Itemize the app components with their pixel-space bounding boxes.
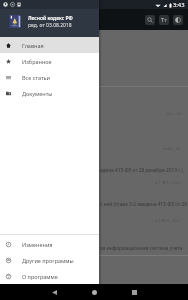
staticText: 3:43 <box>173 1 185 9</box>
button[interactable]: Home <box>86 284 102 300</box>
button[interactable]: Все статьи <box>0 69 99 85</box>
button[interactable]: Contrast <box>171 13 185 27</box>
button[interactable]: Text size <box>157 13 171 27</box>
staticText: ч.1 М.1 - 10.3 <box>155 180 181 185</box>
button[interactable]: Back <box>46 284 62 300</box>
button[interactable]: Избранное <box>0 53 99 69</box>
staticText: Изменения <box>22 241 53 248</box>
button[interactable]: Главная <box>0 37 99 53</box>
staticText: О программе <box>22 273 58 280</box>
staticText: едена 415-ФЗ от 28 декабря 2013 г.) <box>100 167 183 174</box>
button[interactable]: Другие программы <box>0 252 99 268</box>
staticText: Другие программы <box>22 257 74 264</box>
button[interactable]: Search <box>143 13 157 27</box>
staticText: ред. от 03.08.2018 <box>28 22 72 29</box>
staticText: Избранное <box>22 58 52 65</box>
staticText: ст.1 - 32 <box>166 111 181 116</box>
staticText: Все статьи <box>22 74 50 81</box>
staticText: ч.1 М.4 - 33.3 <box>155 218 181 223</box>
staticText: Документы <box>22 90 53 97</box>
staticText: с ней (глава 3-2 введена 415-ФЗ от 28 <box>100 201 187 208</box>
staticText: ая информационная система учета <box>100 245 183 252</box>
button[interactable]: О программе <box>0 268 99 284</box>
staticText: Главная <box>22 42 44 49</box>
button[interactable]: Изменения <box>0 236 99 252</box>
staticText: ст.24 - 33 <box>163 146 181 151</box>
staticText: Лесной кодекс РФ <box>28 15 73 22</box>
button[interactable]: Документы <box>0 85 99 101</box>
button[interactable]: Recents <box>126 284 142 300</box>
